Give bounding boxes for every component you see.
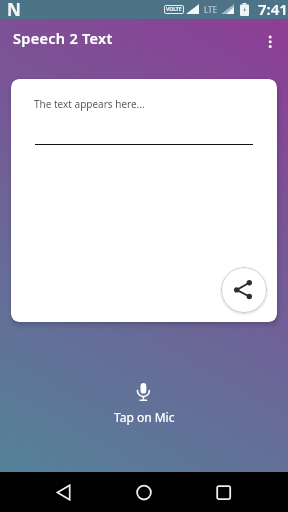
button[interactable]: Tap on Mic — [114, 409, 175, 425]
button[interactable] — [130, 478, 158, 506]
staticText: 7:41 — [258, 0, 288, 18]
staticText: Speech 2 Text — [13, 28, 113, 48]
button[interactable] — [258, 28, 282, 52]
staticText: N — [7, 0, 21, 17]
button[interactable] — [221, 267, 267, 313]
button[interactable] — [209, 478, 237, 506]
button[interactable] — [49, 478, 77, 506]
staticText: The text appears here... — [34, 97, 145, 111]
button[interactable] — [129, 379, 158, 404]
staticText: LTE — [204, 4, 218, 15]
staticText: VOLTE — [166, 6, 182, 13]
